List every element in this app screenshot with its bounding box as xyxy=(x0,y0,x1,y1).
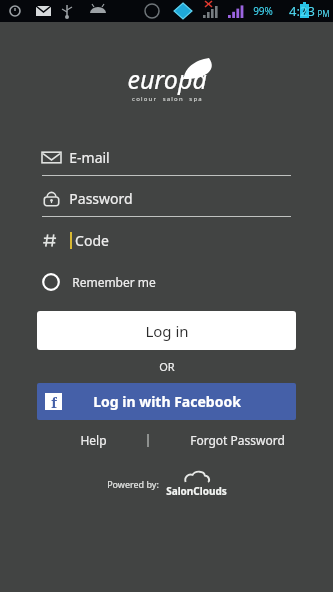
staticText: PM xyxy=(317,8,330,19)
staticText: f xyxy=(51,393,57,410)
staticText: Log in xyxy=(145,321,189,341)
button[interactable]: Log in xyxy=(37,311,296,350)
staticText: Password xyxy=(69,189,133,208)
staticText: OR xyxy=(159,359,175,374)
staticText: Code xyxy=(75,231,109,250)
staticText: Log in with Facebook xyxy=(93,392,241,411)
button[interactable]: Code xyxy=(42,222,291,258)
staticText: E-mail xyxy=(69,148,110,167)
button[interactable]: Remember me xyxy=(42,268,291,296)
staticText: 99% xyxy=(253,4,273,18)
staticText: colour salon spa xyxy=(132,95,203,103)
staticText: Remember me xyxy=(72,274,156,290)
button[interactable]: Forgot Password xyxy=(182,429,293,451)
button[interactable]: Log in with Facebook xyxy=(37,383,296,420)
button[interactable]: Help xyxy=(72,429,115,451)
staticText: 4:23 xyxy=(289,2,315,20)
staticText: Help xyxy=(80,432,107,448)
staticText: SalonClouds xyxy=(166,484,227,498)
staticText: europa xyxy=(127,62,207,96)
staticText: Forgot Password xyxy=(190,432,285,448)
staticText: Powered by: xyxy=(107,478,159,490)
button[interactable]: Password xyxy=(42,180,291,216)
button[interactable]: E-mail xyxy=(42,139,291,175)
